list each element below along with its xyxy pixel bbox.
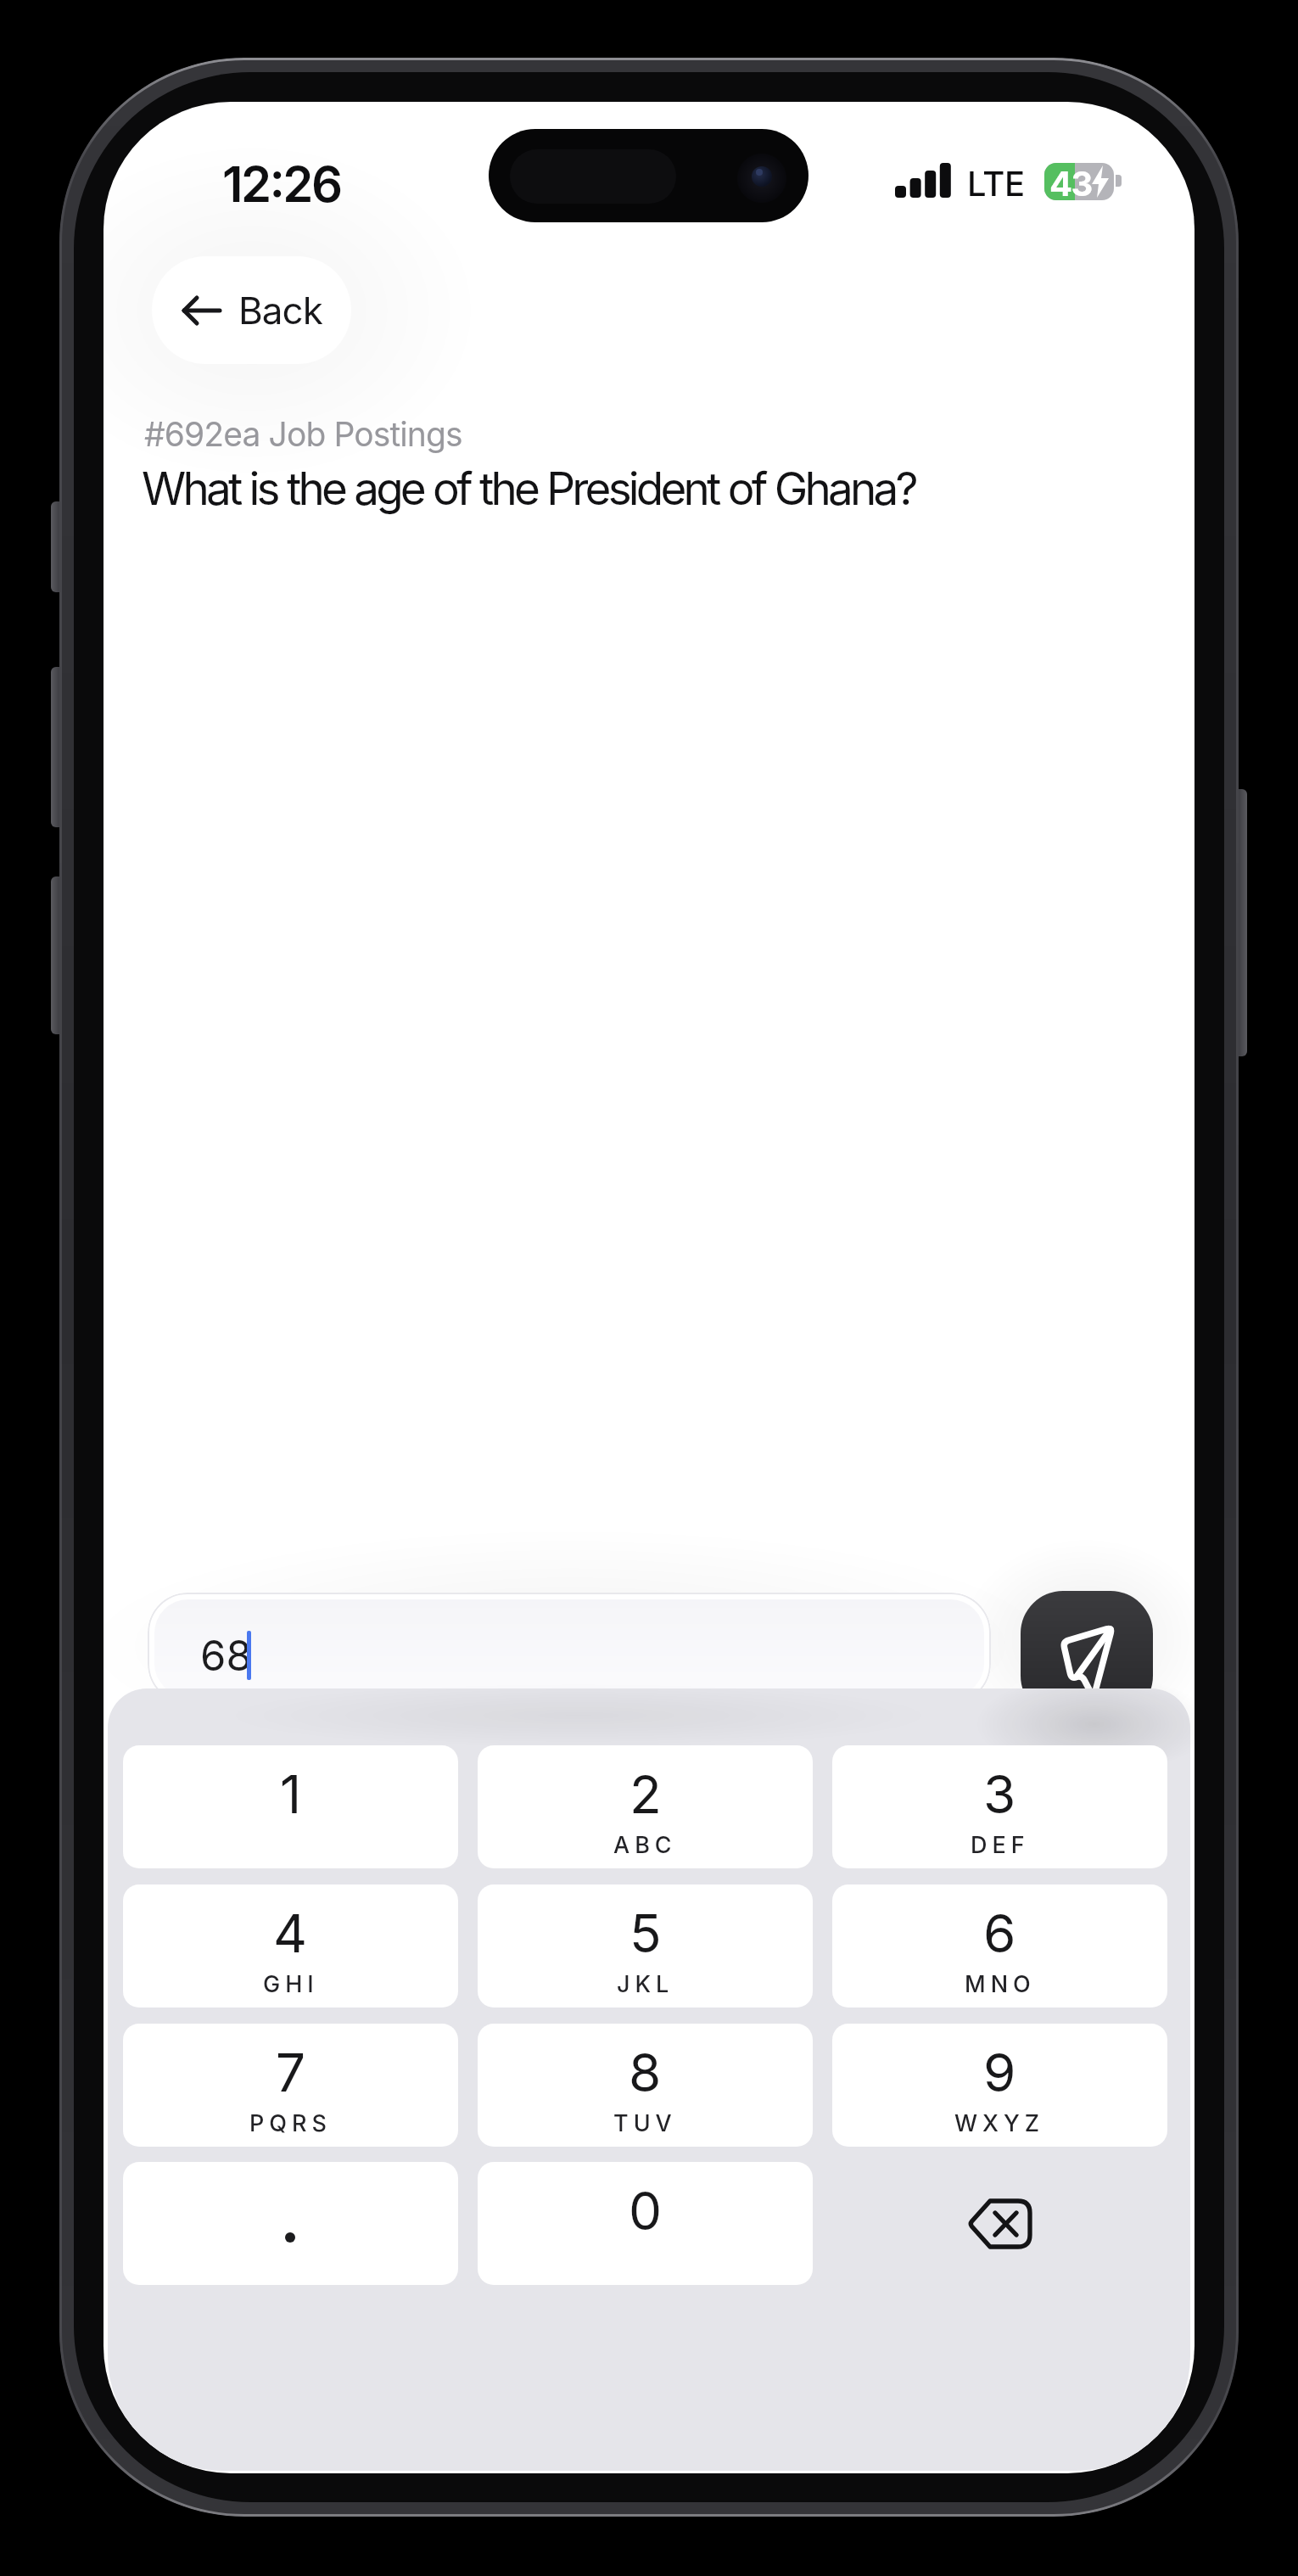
staticText: WXYZ (954, 2109, 1045, 2133)
staticText: Back (238, 288, 322, 333)
staticText: 43 (1049, 163, 1092, 200)
staticText: ABC (613, 1831, 677, 1855)
staticText: 8 (629, 2041, 662, 2104)
staticText: TUV (613, 2109, 677, 2133)
staticText: 7 (276, 2041, 306, 2104)
button[interactable]: 9 (832, 2024, 1167, 2147)
button[interactable] (123, 2162, 458, 2285)
button[interactable]: 5 (478, 1884, 813, 2008)
staticText: 3 (983, 1762, 1016, 1826)
button[interactable]: 3 (832, 1745, 1167, 1868)
staticText: 5 (629, 1901, 662, 1965)
staticText: JKL (617, 1970, 674, 1994)
staticText: What is the age of the President of Ghan… (142, 462, 915, 516)
staticText: 0 (629, 2179, 663, 2243)
staticText: GHI (263, 1970, 319, 1994)
button[interactable] (832, 2162, 1167, 2285)
button[interactable]: Back (152, 256, 351, 364)
button[interactable]: 0 (478, 2162, 813, 2285)
staticText: LTE (967, 163, 1025, 204)
staticText: MNO (965, 1970, 1036, 1994)
staticText: 68 (200, 1631, 252, 1681)
button[interactable] (1021, 1591, 1153, 1718)
staticText: 2 (629, 1762, 662, 1826)
button[interactable]: 7 (123, 2024, 458, 2147)
button[interactable]: 68 (148, 1593, 991, 1704)
button[interactable]: 8 (478, 2024, 813, 2147)
staticText: 12:26 (222, 154, 341, 210)
button[interactable]: 2 (478, 1745, 813, 1868)
staticText: 6 (983, 1901, 1016, 1965)
button[interactable]: 1 (123, 1745, 458, 1868)
staticText: DEF (971, 1831, 1030, 1855)
staticText: 9 (983, 2041, 1016, 2104)
staticText: 1 (280, 1762, 302, 1826)
button[interactable]: 6 (832, 1884, 1167, 2008)
staticText: PQRS (249, 2109, 333, 2133)
staticText: 4 (273, 1901, 308, 1965)
button[interactable]: 4 (123, 1884, 458, 2008)
staticText: #692ea Job Postings (144, 414, 462, 454)
